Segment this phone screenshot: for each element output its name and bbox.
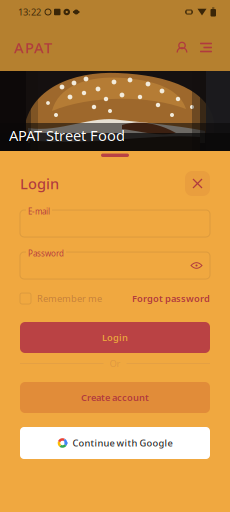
staticText: Remember me: [37, 292, 102, 305]
staticText: Create account: [81, 391, 149, 404]
button[interactable]: Continue with Google: [20, 427, 210, 459]
button[interactable]: Menu: [195, 36, 217, 58]
staticText: E-mail: [28, 206, 50, 217]
button[interactable]: Remember me: [20, 292, 102, 305]
staticText: Login: [102, 331, 128, 344]
staticText: 13:22: [18, 6, 41, 18]
staticText: Forgot password: [132, 292, 210, 305]
button[interactable]: Forgot password: [132, 292, 210, 305]
staticText: Login: [20, 174, 59, 193]
button[interactable]: Close: [185, 171, 210, 196]
button[interactable]: Login: [20, 322, 210, 353]
staticText: Or: [109, 357, 120, 370]
staticText: APAT: [14, 38, 52, 57]
staticText: Password: [28, 248, 64, 259]
button[interactable]: Account: [171, 36, 193, 58]
staticText: Continue with Google: [72, 437, 172, 449]
button[interactable]: Create account: [20, 382, 210, 413]
staticText: APAT Street Food: [9, 125, 125, 145]
